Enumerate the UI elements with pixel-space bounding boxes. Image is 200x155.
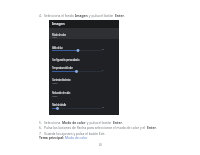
staticText: 45 <box>99 143 102 147</box>
button[interactable]: Contraste dinámico <box>49 73 119 85</box>
staticText: 6. <box>39 125 42 129</box>
staticText: 15 <box>102 106 105 109</box>
staticText: Guarda los ajustes y pulsa el botón Exit… <box>44 131 106 135</box>
button[interactable]: Brillo de luz <box>49 39 119 52</box>
staticText: . <box>124 13 125 17</box>
staticText: Reducción de ruido <box>52 91 71 95</box>
staticText: Modo de color <box>62 120 86 124</box>
staticText: y pulsa el botón <box>88 13 115 17</box>
button[interactable]: Nivel de detalle <box>49 97 119 111</box>
staticText: Tema principal: <box>39 135 65 139</box>
staticText: Vívido <box>52 36 57 39</box>
staticText: Enter <box>115 13 124 17</box>
staticText: Medio <box>52 82 58 85</box>
staticText: 5. <box>39 120 42 124</box>
staticText: Imagen <box>52 21 65 25</box>
staticText: y pulsa el botón <box>86 120 113 124</box>
staticText: Enter <box>113 120 122 124</box>
button[interactable]: Modo de color <box>49 28 119 39</box>
staticText: Medio <box>52 95 58 98</box>
staticText: 0 <box>102 69 104 72</box>
staticText: Temperatura del color <box>52 66 73 70</box>
button[interactable]: Reducción de ruido <box>49 85 119 97</box>
staticText: 87 <box>102 48 105 51</box>
staticText: Imagen <box>75 13 88 17</box>
staticText: Configuración personalizada <box>52 58 80 62</box>
staticText: . <box>156 125 157 129</box>
staticText: Selecciona el fondo <box>44 13 75 17</box>
staticText: 4. <box>39 13 42 17</box>
button[interactable]: Temperatura del color <box>49 60 119 73</box>
staticText: 7. <box>39 131 42 135</box>
button[interactable]: Configuración personalizada <box>49 52 119 60</box>
staticText: Nivel de detalle <box>52 103 66 107</box>
staticText: Contraste dinámico <box>52 78 71 82</box>
staticText: Pulsa los botones de flecha para selecci… <box>44 125 147 129</box>
staticText: . <box>122 120 123 124</box>
staticText: Selecciona <box>44 120 62 124</box>
staticText: Modo de color <box>52 33 66 37</box>
staticText: Enter <box>147 125 156 129</box>
staticText: Modo de color <box>65 135 88 139</box>
staticText: Brillo de luz <box>52 46 63 50</box>
